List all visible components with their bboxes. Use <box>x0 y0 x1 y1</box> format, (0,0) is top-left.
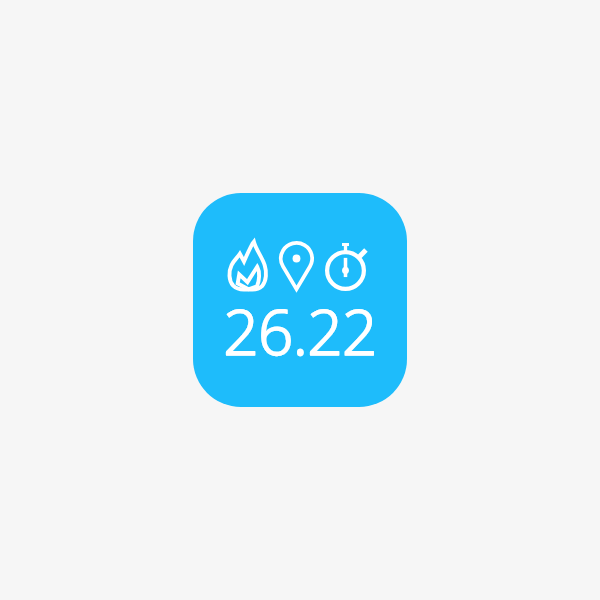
staticText: 26.22 <box>223 289 377 361</box>
staticText: 26.22 <box>223 289 377 361</box>
other: Calories burned <box>229 239 267 290</box>
other: Distance <box>279 241 314 291</box>
other: Duration <box>325 243 366 291</box>
button[interactable]: Activity summary: 26.22 <box>193 193 407 407</box>
